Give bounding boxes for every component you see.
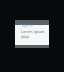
staticText: Sign in xyxy=(21,22,32,28)
staticText: Lorem ipsum dolor xyxy=(21,29,45,39)
